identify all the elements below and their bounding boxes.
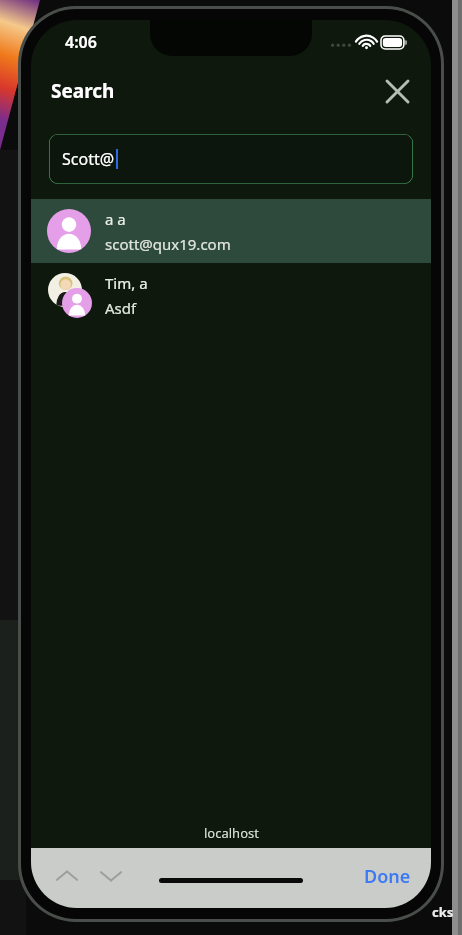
- staticText: Asdf: [105, 298, 137, 318]
- staticText: Done: [364, 864, 411, 889]
- staticText: cks: [432, 903, 454, 921]
- staticText: a a: [105, 209, 126, 229]
- staticText: localhost: [204, 824, 259, 842]
- button[interactable]: Tim, a: [31, 263, 431, 327]
- button[interactable]: Scott@: [49, 134, 413, 184]
- button[interactable]: Done: [350, 854, 425, 898]
- button[interactable]: Next field: [89, 854, 133, 898]
- staticText: Scott@: [62, 148, 115, 170]
- button[interactable]: a a: [31, 199, 431, 263]
- staticText: Search: [51, 78, 115, 104]
- button[interactable]: Close: [375, 69, 419, 113]
- staticText: scott@qux19.com: [105, 234, 231, 254]
- button[interactable]: Previous field: [45, 854, 89, 898]
- staticText: Tim, a: [105, 273, 148, 293]
- staticText: 4:06: [65, 31, 97, 53]
